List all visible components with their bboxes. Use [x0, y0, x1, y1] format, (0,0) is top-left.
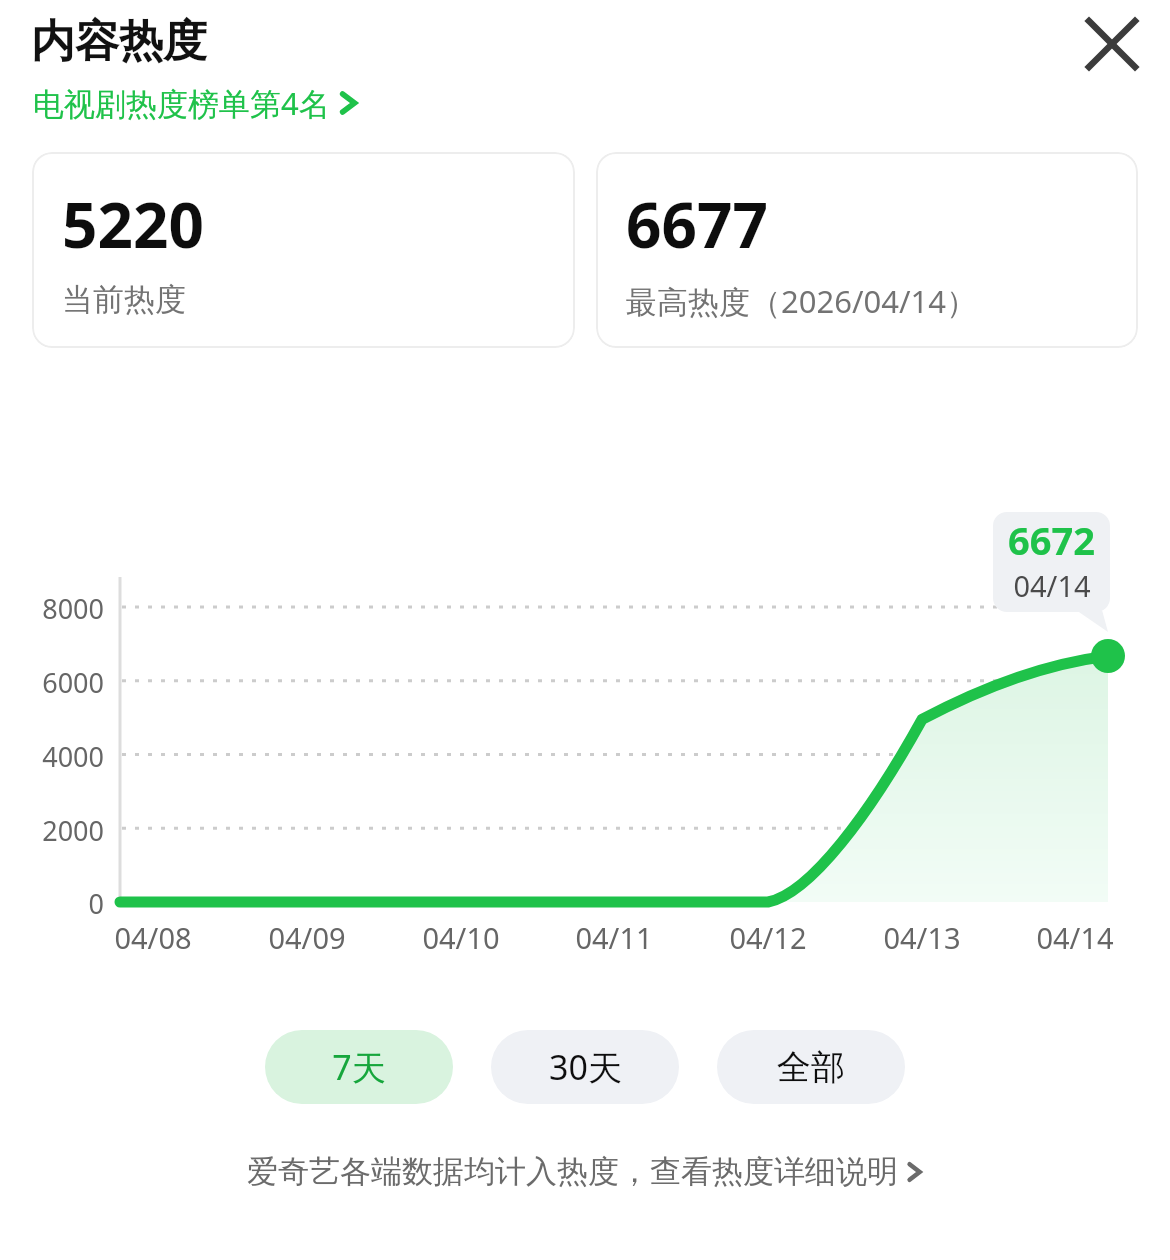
button[interactable]: 6677: [596, 152, 1138, 348]
staticText: 全部: [777, 1046, 845, 1089]
staticText: 6000: [42, 664, 104, 701]
staticText: 5220: [62, 182, 204, 266]
staticText: 2000: [42, 812, 104, 849]
staticText: 0: [88, 885, 104, 922]
staticText: 7天: [332, 1044, 386, 1090]
staticText: 04/13: [883, 918, 961, 957]
staticText: 6672: [1008, 514, 1095, 566]
staticText: 04/08: [114, 918, 192, 957]
button[interactable]: 5220: [32, 152, 575, 348]
staticText: 04/11: [575, 918, 653, 957]
button[interactable]: 7天: [265, 1030, 453, 1104]
staticText: 当前热度: [62, 280, 186, 319]
staticText: 8000: [42, 590, 104, 627]
button[interactable]: 关闭: [1068, 0, 1156, 88]
button[interactable]: 电视剧热度榜单第4名: [31, 80, 361, 126]
staticText: 30天: [549, 1044, 622, 1090]
staticText: 内容热度: [31, 14, 207, 69]
button[interactable]: 30天: [491, 1030, 679, 1104]
staticText: 04/10: [422, 918, 500, 957]
staticText: 04/09: [268, 918, 346, 957]
staticText: 电视剧热度榜单第4名: [33, 82, 330, 124]
button[interactable]: 爱奇艺各端数据均计入热度，查看热度详细说明: [0, 1152, 1170, 1191]
staticText: 04/12: [729, 918, 807, 957]
staticText: 04/14: [1013, 566, 1091, 605]
staticText: 6677: [626, 182, 768, 266]
staticText: 04/14: [1036, 918, 1114, 957]
staticText: 爱奇艺各端数据均计入热度，查看热度详细说明: [247, 1152, 898, 1191]
staticText: 最高热度（2026/04/14）: [626, 280, 977, 322]
button[interactable]: 全部: [717, 1030, 905, 1104]
staticText: 4000: [42, 738, 104, 775]
